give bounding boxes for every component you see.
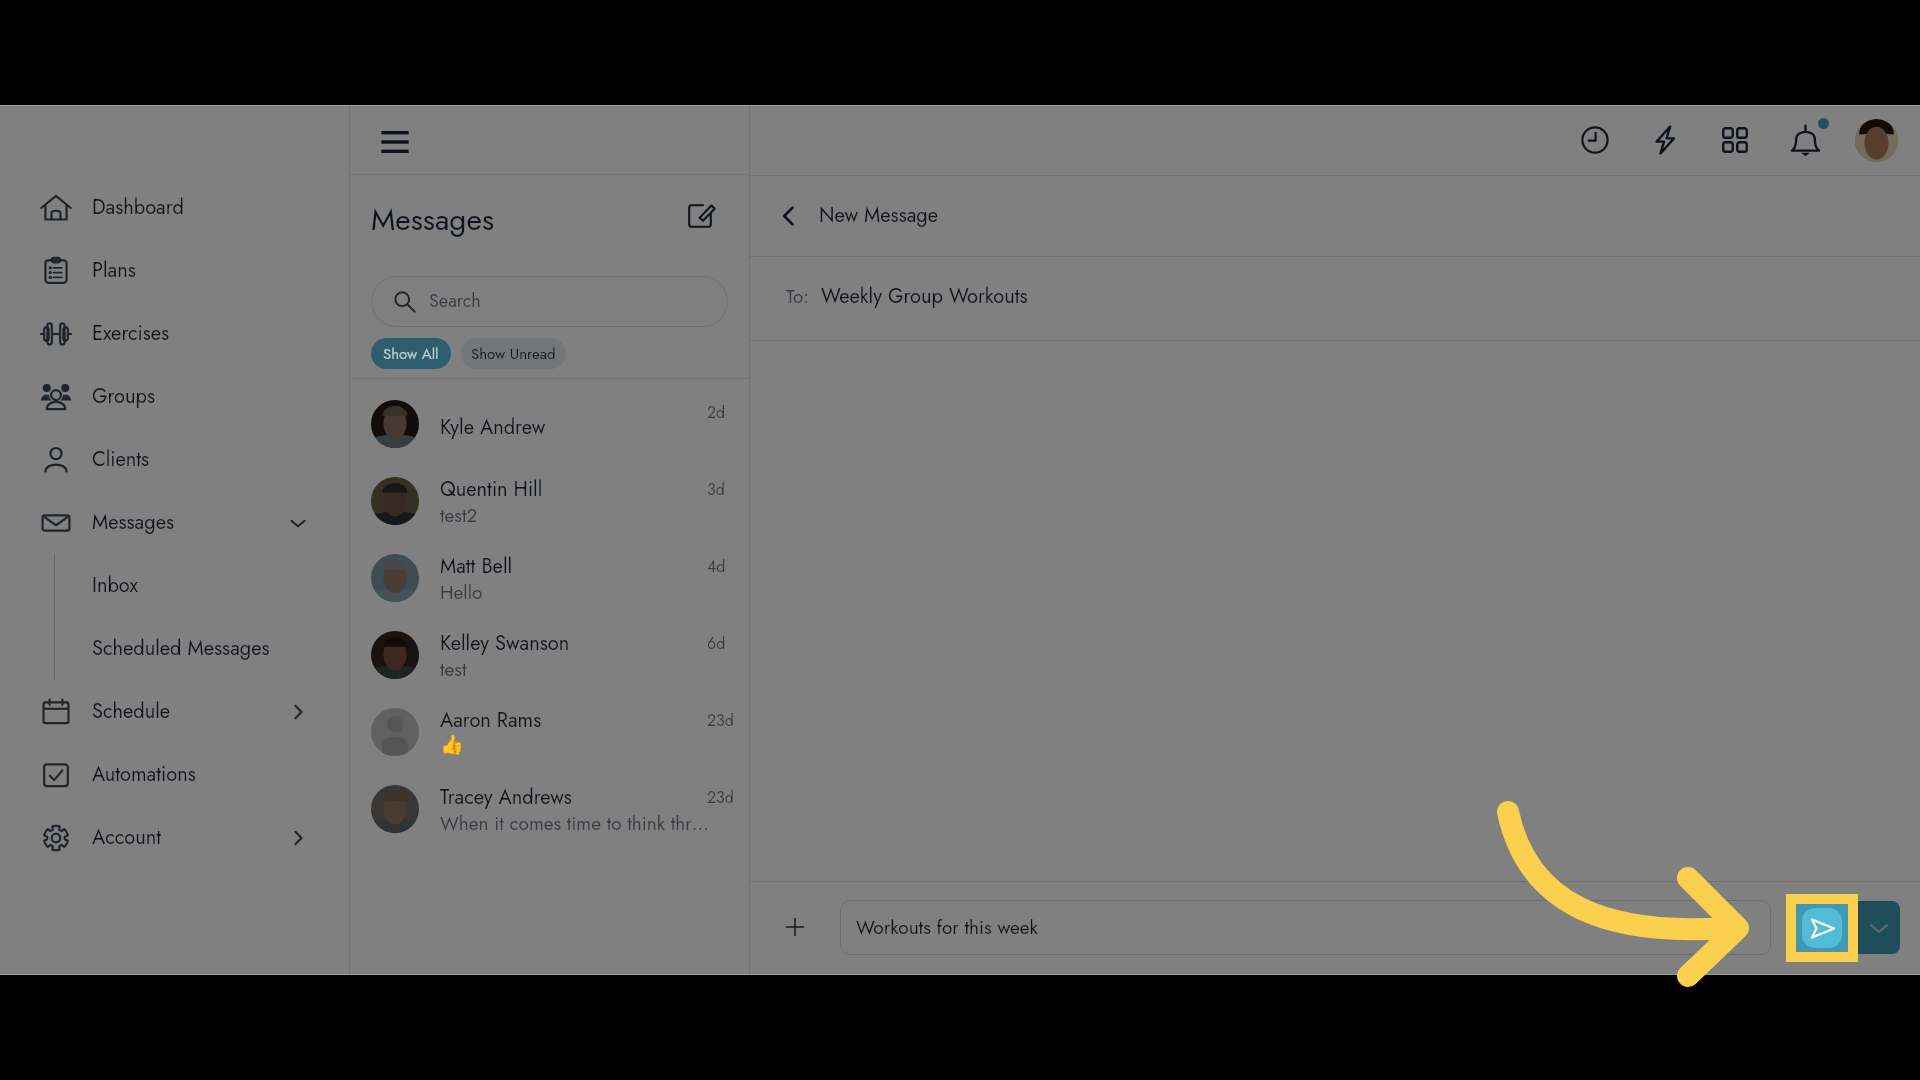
staticText: Tracey Andrews xyxy=(440,783,572,812)
staticText: 6d xyxy=(707,632,726,655)
button[interactable]: Account xyxy=(0,806,349,869)
staticText: Messages xyxy=(92,508,287,537)
staticText: Hello xyxy=(440,579,483,606)
staticText: 3d xyxy=(707,478,725,501)
staticText: Scheduled Messages xyxy=(92,634,270,663)
button[interactable]: Show All xyxy=(371,338,451,369)
staticText: Exercises xyxy=(92,319,349,348)
button[interactable]: Plans xyxy=(0,239,349,302)
button[interactable]: Exercises xyxy=(0,302,349,365)
staticText: Messages xyxy=(371,198,494,241)
button[interactable]: Recent xyxy=(1580,125,1610,155)
button[interactable]: Messages xyxy=(0,491,349,554)
button[interactable]: Inbox xyxy=(0,554,349,617)
staticText: Aaron Rams xyxy=(440,706,542,735)
staticText: Groups xyxy=(92,382,349,411)
staticText: Dashboard xyxy=(92,193,349,222)
staticText: 23d xyxy=(707,709,734,732)
button[interactable]: More send options xyxy=(1858,901,1900,954)
button[interactable]: Aaron Rams xyxy=(350,702,749,779)
staticText: Workouts for this week xyxy=(856,914,1038,941)
staticText: 👍 xyxy=(440,733,464,755)
button[interactable]: Menu xyxy=(383,131,407,153)
button[interactable]: Quick actions xyxy=(1649,124,1681,156)
staticText: To: xyxy=(786,283,810,310)
staticText: Plans xyxy=(92,256,349,285)
staticText: Kyle Andrew xyxy=(440,413,546,442)
staticText: Automations xyxy=(92,760,349,789)
button[interactable]: Apps xyxy=(1721,126,1749,154)
staticText: Search xyxy=(429,288,481,314)
button[interactable]: Kelley Swanson xyxy=(350,625,749,702)
staticText: Kelley Swanson xyxy=(440,629,570,658)
staticText: test2 xyxy=(440,502,478,529)
button[interactable]: Clients xyxy=(0,428,349,491)
staticText: 4d xyxy=(707,555,726,578)
button[interactable]: Workouts for this week xyxy=(840,900,1771,955)
button[interactable]: Automations xyxy=(0,743,349,806)
button[interactable]: New message xyxy=(685,201,715,231)
staticText: test xyxy=(440,656,467,683)
button[interactable]: Notifications xyxy=(1790,124,1821,155)
button[interactable]: Matt Bell xyxy=(350,548,749,625)
button[interactable]: Dashboard xyxy=(0,176,349,239)
staticText: 2d xyxy=(707,401,726,424)
staticText: Account xyxy=(92,823,287,852)
staticText: When it comes time to think thr… xyxy=(440,810,709,837)
staticText: Show Unread xyxy=(471,343,556,365)
button[interactable]: Add attachment xyxy=(784,916,806,938)
staticText: Inbox xyxy=(92,571,138,600)
button[interactable]: Kyle Andrew xyxy=(350,394,749,471)
button[interactable]: Show Unread xyxy=(461,338,566,369)
button[interactable]: Schedule xyxy=(0,680,349,743)
staticText: Schedule xyxy=(92,697,287,726)
staticText: Show All xyxy=(383,343,439,365)
staticText: Matt Bell xyxy=(440,552,513,581)
staticText: Quentin Hill xyxy=(440,475,543,504)
button[interactable]: Back xyxy=(774,201,804,231)
staticText: Clients xyxy=(92,445,349,474)
staticText: Weekly Group Workouts xyxy=(821,282,1028,311)
staticText: 23d xyxy=(707,786,734,809)
button[interactable]: Send xyxy=(1796,904,1858,951)
button[interactable]: Scheduled Messages xyxy=(0,617,349,680)
button[interactable]: Groups xyxy=(0,365,349,428)
button[interactable]: Account xyxy=(1855,119,1898,162)
button[interactable]: Tracey Andrews xyxy=(350,779,749,856)
staticText: New Message xyxy=(819,201,939,230)
button[interactable]: Search xyxy=(371,276,728,327)
button[interactable]: Quentin Hill xyxy=(350,471,749,548)
